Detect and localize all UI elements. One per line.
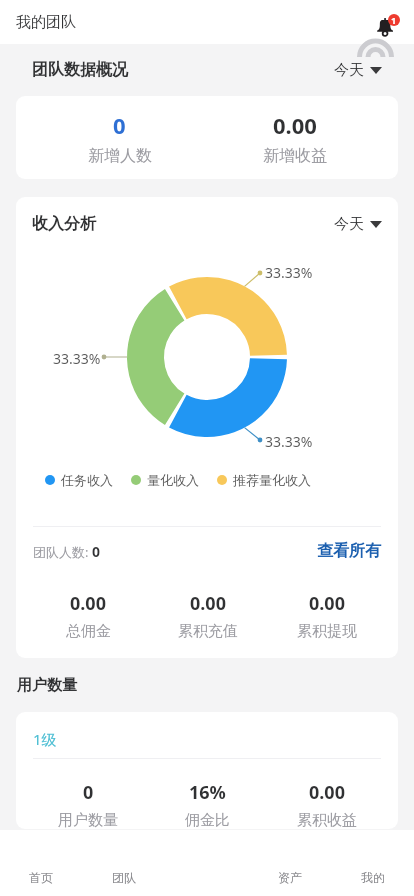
staticText: 33.33%	[265, 263, 313, 282]
staticText: 0.00	[273, 110, 317, 140]
staticText: 查看所有	[317, 541, 381, 561]
button[interactable]: 查看所有	[317, 541, 381, 561]
staticText: 累积充值	[178, 622, 238, 641]
staticText: 累积收益	[297, 811, 357, 829]
staticText: 0.00	[309, 591, 345, 616]
staticText: 用户数量	[17, 676, 77, 695]
staticText: 量化收入	[147, 472, 199, 488]
staticText: 今天	[334, 61, 364, 80]
staticText: 推荐量化收入	[233, 472, 311, 488]
button[interactable]: 今天	[334, 215, 382, 234]
staticText: 收入分析	[32, 214, 96, 234]
staticText: 1级	[33, 729, 57, 749]
staticText: 33.33%	[265, 432, 313, 451]
button[interactable]: 首页	[0, 830, 82, 896]
staticText: 新增人数	[88, 146, 152, 166]
staticText: 团队	[112, 870, 136, 885]
staticText: 今天	[334, 215, 364, 234]
staticText: 我的	[361, 870, 385, 885]
staticText: 1	[391, 14, 397, 26]
staticText: 16%	[189, 780, 226, 805]
button[interactable]: 资产	[248, 830, 331, 896]
staticText: 0	[113, 110, 126, 140]
staticText: 33.33%	[53, 349, 101, 368]
staticText: 资产	[278, 870, 302, 885]
button[interactable]: Notifications	[375, 15, 399, 39]
staticText: 0	[92, 542, 101, 561]
staticText: 0.00	[309, 780, 345, 805]
staticText: 新增收益	[263, 146, 327, 166]
button[interactable]: 团队	[82, 830, 165, 896]
staticText: 团队人数:	[33, 543, 92, 561]
staticText: 累积提现	[297, 622, 357, 641]
staticText: 0.00	[70, 591, 106, 616]
staticText: 首页	[29, 870, 53, 885]
button[interactable]: 我的	[331, 830, 414, 896]
staticText: 任务收入	[61, 472, 113, 488]
staticText: 团队数据概况	[32, 60, 128, 80]
staticText: 0.00	[190, 591, 226, 616]
button[interactable]: 今天	[334, 61, 382, 80]
staticText: 用户数量	[58, 811, 118, 829]
staticText: 佣金比	[185, 811, 230, 829]
staticText: 我的团队	[16, 13, 76, 32]
staticText: 0	[83, 780, 94, 805]
staticText: 总佣金	[66, 622, 111, 641]
